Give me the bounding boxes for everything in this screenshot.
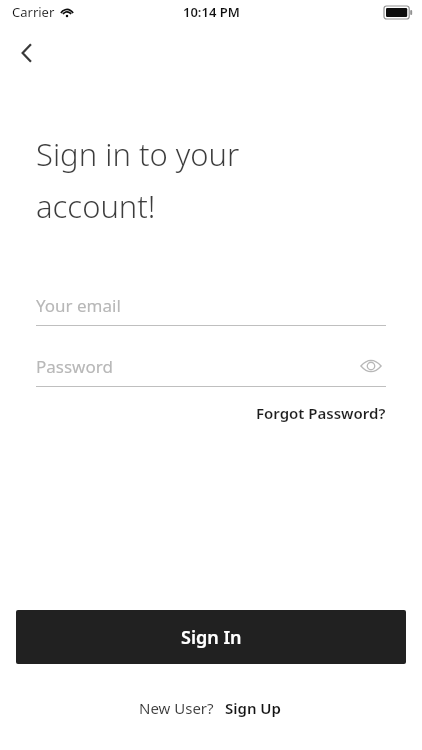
staticText: Password (36, 355, 113, 378)
button[interactable]: Forgot Password? (254, 399, 388, 427)
button[interactable]: Show password (356, 351, 386, 381)
staticText: Your email (36, 294, 121, 317)
button[interactable]: Password (36, 355, 356, 378)
staticText: account! (36, 185, 156, 227)
staticText: 10:14 PM (183, 3, 240, 21)
button[interactable]: Your email (36, 289, 386, 326)
button[interactable]: Sign Up (223, 694, 283, 722)
staticText: Forgot Password? (256, 403, 386, 423)
staticText: Sign Up (225, 698, 281, 718)
button[interactable]: Back (6, 32, 48, 74)
button[interactable]: Sign In (16, 610, 406, 664)
staticText: New User? (139, 698, 214, 718)
staticText: Sign in to your (36, 133, 240, 175)
staticText: Carrier (12, 3, 55, 21)
staticText: Sign In (181, 625, 242, 650)
